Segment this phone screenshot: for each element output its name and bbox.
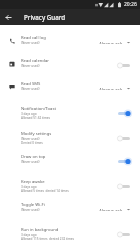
button[interactable]: Toggle Wi-Fi bbox=[0, 192, 140, 215]
staticText: Read SMS bbox=[21, 81, 41, 87]
staticText: Always ask bbox=[99, 208, 123, 211]
button[interactable]: Modify settings bbox=[0, 119, 140, 144]
staticText: 20:26 bbox=[124, 1, 137, 8]
staticText: (Never used) bbox=[21, 208, 40, 212]
button[interactable]: Always ask bbox=[97, 37, 139, 48]
button[interactable]: Keep awake bbox=[0, 167, 140, 192]
button[interactable]: Always ask bbox=[97, 204, 139, 215]
staticText: Toggle Wi-Fi bbox=[21, 202, 45, 208]
staticText: Privacy Guard bbox=[24, 13, 66, 21]
staticText: (Never used) bbox=[21, 64, 40, 68]
staticText: Always ask bbox=[99, 41, 123, 44]
staticText: (Never used) bbox=[21, 137, 40, 141]
button[interactable]: Notification/Toast bbox=[0, 94, 140, 119]
button[interactable]: Read SMS bbox=[0, 71, 140, 94]
staticText: Modify settings bbox=[21, 131, 52, 137]
staticText: (Never used) bbox=[21, 160, 40, 164]
button[interactable]: Switch off bbox=[117, 60, 131, 71]
staticText: Always ask bbox=[99, 87, 123, 90]
button[interactable]: Switch on bbox=[117, 156, 131, 167]
button[interactable]: Always ask bbox=[97, 83, 139, 94]
button[interactable]: Run in background bbox=[0, 215, 140, 240]
staticText: Read calendar bbox=[21, 58, 50, 64]
staticText: Denied 0 times bbox=[21, 141, 43, 144]
staticText: Allowed 51.62 times bbox=[21, 116, 51, 119]
button[interactable]: Back bbox=[0, 9, 17, 25]
button[interactable]: Read call log bbox=[0, 25, 140, 48]
staticText: Run in background bbox=[21, 227, 59, 233]
button[interactable]: Switch off bbox=[117, 229, 131, 240]
staticText: Notification/Toast bbox=[21, 106, 56, 112]
staticText: Allowed 5 times, denied 14 times bbox=[21, 189, 69, 192]
staticText: 3 days ago bbox=[21, 233, 37, 237]
button[interactable]: Draw on top bbox=[0, 144, 140, 167]
staticText: Allowed 115 times, denied 232 times bbox=[21, 237, 75, 240]
button[interactable]: Switch on bbox=[117, 108, 131, 119]
staticText: 3 days ago bbox=[21, 112, 37, 116]
staticText: (Never used) bbox=[21, 87, 40, 91]
staticText: (Never used) bbox=[21, 41, 40, 45]
staticText: Draw on top bbox=[21, 154, 46, 160]
button[interactable]: Read calendar bbox=[0, 48, 140, 71]
staticText: Read call log bbox=[21, 35, 46, 41]
staticText: 3 days ago bbox=[21, 185, 37, 189]
staticText: Keep awake bbox=[21, 179, 45, 185]
button[interactable]: Switch off bbox=[117, 181, 131, 192]
button[interactable]: Switch off bbox=[117, 133, 131, 144]
